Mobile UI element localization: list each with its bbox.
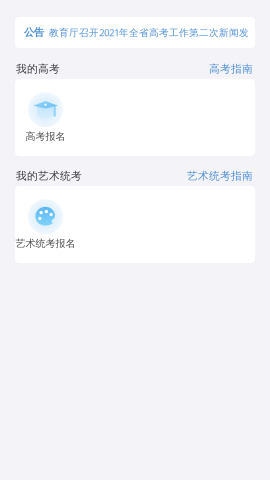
- staticText: 教育厅召开2021年全省高考工作第二次新闻发: [49, 26, 249, 39]
- staticText: 高考指南: [209, 62, 253, 76]
- button[interactable]: 艺术统考报名: [15, 193, 76, 255]
- staticText: 公告: [24, 26, 44, 39]
- staticText: 高考报名: [25, 130, 65, 143]
- button[interactable]: 高考报名: [15, 86, 76, 148]
- staticText: 艺术统考报名: [15, 237, 75, 250]
- button[interactable]: 艺术统考指南: [187, 169, 253, 183]
- staticText: 艺术统考指南: [187, 169, 253, 183]
- button[interactable]: 高考指南: [209, 62, 253, 76]
- staticText: 我的艺术统考: [16, 169, 82, 183]
- staticText: 我的高考: [16, 62, 60, 76]
- button[interactable]: 公告: [15, 17, 255, 48]
